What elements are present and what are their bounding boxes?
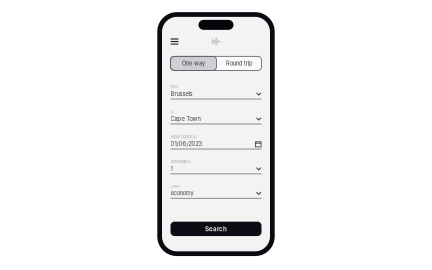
button[interactable]: Round trip: [216, 56, 261, 70]
button[interactable]: class: [170, 184, 261, 199]
button[interactable]: Menu: [170, 37, 184, 46]
staticText: 01/06/2023: [170, 140, 202, 147]
staticText: from: [170, 84, 178, 89]
staticText: Round trip: [226, 60, 252, 67]
staticText: passengers: [170, 159, 190, 164]
staticText: 1: [170, 165, 172, 172]
button[interactable]: depart (dd/m/y): [170, 134, 261, 149]
staticText: economy: [170, 190, 193, 197]
staticText: Brussels: [170, 90, 192, 97]
button[interactable]: Search: [170, 222, 261, 236]
button[interactable]: from: [170, 84, 261, 99]
button[interactable]: to: [170, 109, 261, 124]
staticText: to: [170, 109, 173, 114]
staticText: One way: [182, 60, 205, 67]
staticText: class: [170, 184, 179, 188]
button[interactable]: passengers: [170, 159, 261, 174]
staticText: depart (dd/m/y): [170, 134, 196, 139]
button[interactable]: One way: [170, 56, 216, 70]
staticText: Cape Town: [170, 115, 200, 122]
staticText: Search: [205, 225, 227, 233]
